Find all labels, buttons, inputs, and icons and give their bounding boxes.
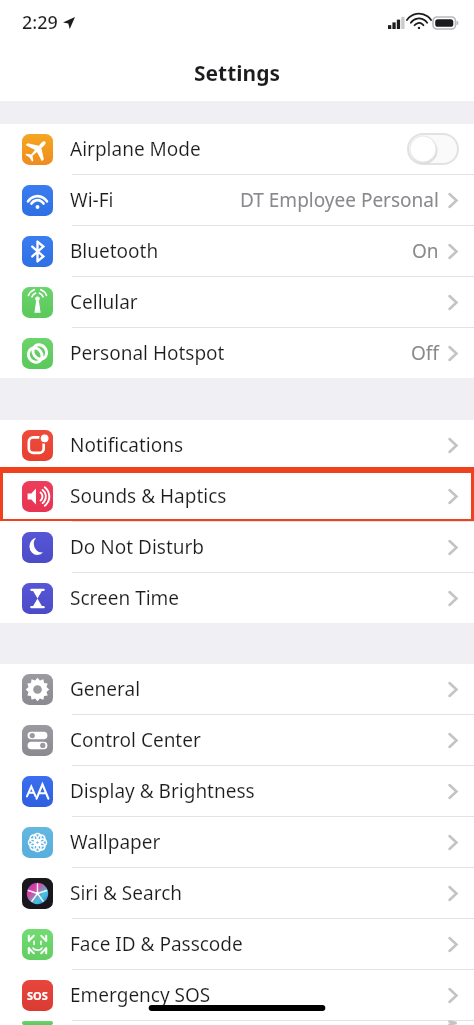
button[interactable]: SOS xyxy=(0,970,474,1020)
staticText: Bluetooth xyxy=(70,238,412,264)
button[interactable]: Screen Time xyxy=(0,573,474,623)
staticText: 2:29 xyxy=(22,10,58,35)
staticText: Face ID & Passcode xyxy=(70,931,448,957)
button[interactable]: General xyxy=(0,664,474,714)
staticText: Wallpaper xyxy=(70,829,448,855)
button[interactable]: Sounds & Haptics xyxy=(0,471,474,521)
button[interactable]: Control Center xyxy=(0,715,474,765)
button[interactable]: Wallpaper xyxy=(0,817,474,867)
staticText: General xyxy=(70,676,448,702)
button[interactable]: Face ID & Passcode xyxy=(0,919,474,969)
staticText: Personal Hotspot xyxy=(70,340,411,366)
staticText: Airplane Mode xyxy=(70,136,408,162)
button[interactable]: Do Not Disturb xyxy=(0,522,474,572)
button[interactable]: Battery xyxy=(0,1021,474,1025)
staticText: Emergency SOS xyxy=(70,982,448,1008)
staticText: Control Center xyxy=(70,727,448,753)
button[interactable]: Display & Brightness xyxy=(0,766,474,816)
staticText: Settings xyxy=(194,59,281,88)
button[interactable]: Notifications xyxy=(0,420,474,470)
staticText: Off xyxy=(411,340,439,366)
staticText: DT Employee Personal xyxy=(240,187,439,213)
staticText: SOS xyxy=(27,988,48,1003)
staticText: Screen Time xyxy=(70,585,448,611)
staticText: Siri & Search xyxy=(70,880,448,906)
staticText: On xyxy=(412,238,439,264)
staticText: Cellular xyxy=(70,289,448,315)
button[interactable]: Bluetooth xyxy=(0,226,474,276)
button[interactable]: Siri & Search xyxy=(0,868,474,918)
button[interactable]: Wi-Fi xyxy=(0,175,474,225)
staticText: Do Not Disturb xyxy=(70,534,448,560)
staticText: Notifications xyxy=(70,432,448,458)
staticText: Sounds & Haptics xyxy=(70,483,448,509)
staticText: Display & Brightness xyxy=(70,778,448,804)
button[interactable]: Airplane Mode xyxy=(0,124,474,174)
button[interactable]: Personal Hotspot xyxy=(0,328,474,378)
button[interactable]: Cellular xyxy=(0,277,474,327)
staticText: Wi-Fi xyxy=(70,187,240,213)
